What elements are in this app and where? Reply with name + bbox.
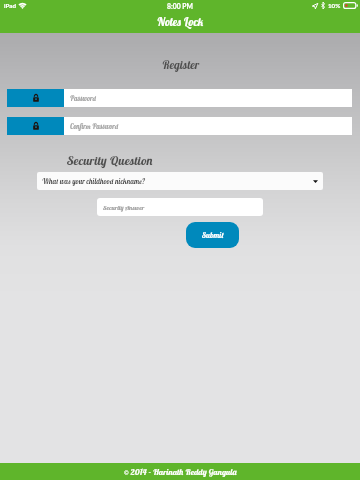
button[interactable]: What was your childhood nickname? <box>37 172 323 190</box>
button[interactable]: Submit <box>186 222 239 248</box>
staticText: Password <box>70 94 97 102</box>
staticText: What was your childhood nickname? <box>42 177 145 186</box>
staticText: Confirm Password <box>70 122 119 130</box>
staticText: 10% <box>328 2 341 9</box>
staticText: Security Question <box>67 152 153 168</box>
button[interactable]: Lock <box>7 117 64 135</box>
staticText: 8:00 PM <box>167 2 193 10</box>
staticText: Submit <box>202 230 224 240</box>
button[interactable]: Password <box>64 89 352 107</box>
button[interactable]: Lock <box>7 89 64 107</box>
staticText: © 2014 - Harinath Reddy Gangula <box>124 467 237 477</box>
staticText: Register <box>162 57 199 71</box>
staticText: Notes Lock <box>157 15 204 29</box>
staticText: iPad <box>4 2 16 9</box>
button[interactable]: Security Answer <box>97 198 263 216</box>
staticText: Security Answer <box>103 203 145 211</box>
button[interactable]: Confirm Password <box>64 117 352 135</box>
